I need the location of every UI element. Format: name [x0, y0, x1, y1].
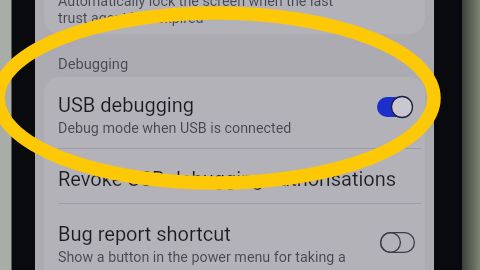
button[interactable]: USB debugging [44, 77, 425, 148]
staticText: Bug report shortcut [58, 222, 231, 245]
staticText: trust agent has expired [58, 10, 204, 27]
button[interactable]: Bug report shortcut, off [380, 232, 415, 253]
staticText: Show a button in the power menu for taki… [58, 249, 346, 266]
staticText: Debug mode when USB is connected [58, 120, 292, 137]
button[interactable]: Automatically lock the screen when the l… [44, 0, 425, 34]
staticText: Revoke USB debugging authorisations [58, 167, 397, 190]
button[interactable]: Revoke USB debugging authorisations [44, 148, 425, 203]
staticText: USB debugging [58, 93, 195, 116]
button[interactable]: Bug report shortcut [44, 203, 425, 270]
staticText: Debugging [58, 55, 129, 72]
button[interactable]: USB debugging, on [377, 97, 412, 117]
staticText: Automatically lock the screen when the l… [58, 0, 334, 10]
